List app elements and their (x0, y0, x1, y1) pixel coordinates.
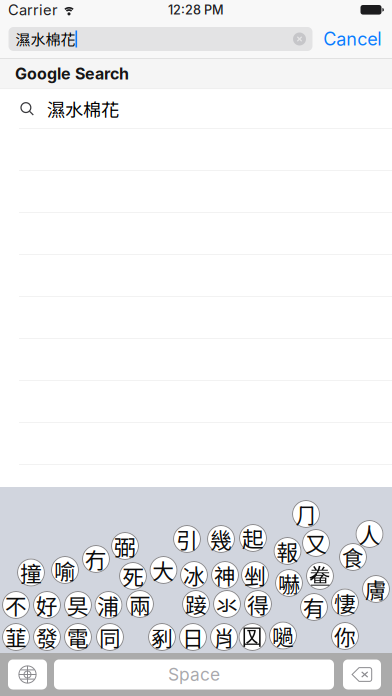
button[interactable]: 食 (339, 543, 367, 571)
button[interactable]: 好 (33, 591, 61, 619)
staticText: 踥 (185, 588, 207, 620)
staticText: 濕水棉花 (15, 28, 75, 50)
button[interactable]: 人 (355, 520, 383, 548)
button[interactable]: 引 (173, 525, 201, 553)
button[interactable]: 得 (244, 590, 272, 618)
button[interactable]: Delete (343, 659, 381, 689)
staticText: 剉 (244, 559, 266, 591)
button[interactable]: 冰 (180, 561, 208, 589)
button[interactable]: 不 (2, 591, 30, 619)
button[interactable]: Space (54, 659, 334, 689)
staticText: 12:28 PM (168, 2, 224, 18)
staticText: Cancel (323, 28, 381, 50)
button[interactable]: 㘝 (238, 623, 266, 651)
staticText: 大 (152, 554, 174, 586)
button[interactable]: 幾 (207, 525, 235, 553)
button[interactable]: Cancel (312, 23, 392, 55)
button[interactable]: 鲞 (306, 562, 334, 590)
button[interactable]: 起 (239, 524, 267, 552)
staticText: 弼 (114, 530, 136, 562)
staticText: 有 (303, 591, 325, 623)
staticText: 肖 (213, 621, 235, 653)
staticText: 㘝 (241, 623, 263, 651)
button[interactable]: 剢 (148, 623, 176, 651)
button[interactable]: 兩 (126, 590, 154, 618)
staticText: ⺆ (295, 498, 317, 530)
staticText: 又 (305, 527, 327, 559)
staticText: 死 (122, 560, 144, 592)
button[interactable]: 報 (273, 537, 301, 565)
button[interactable]: 氺 (213, 590, 241, 618)
button[interactable]: 喻 (51, 556, 79, 584)
staticText: 嚇 (278, 567, 300, 599)
staticText: 人 (358, 518, 380, 550)
button[interactable]: 撞 (17, 558, 45, 586)
button[interactable]: 肖 (210, 623, 238, 651)
button[interactable]: 旲 (64, 591, 92, 619)
button[interactable]: 㗻 (269, 621, 297, 649)
button[interactable]: Switch keyboard (8, 659, 47, 689)
staticText: 喻 (54, 554, 76, 586)
button[interactable]: 又 (302, 529, 330, 557)
button[interactable]: 膚 (362, 575, 390, 603)
staticText: 冰 (183, 559, 205, 591)
staticText: 你 (334, 620, 356, 652)
button[interactable]: 你 (331, 622, 359, 650)
button[interactable]: ⺆ (292, 500, 320, 528)
staticText: 好 (36, 589, 58, 621)
staticText: 發 (36, 621, 58, 653)
button[interactable]: 悽 (331, 588, 359, 616)
button[interactable]: 同 (96, 623, 124, 651)
staticText: 旲 (67, 589, 89, 621)
staticText: 㗻 (272, 620, 294, 651)
staticText: 冇 (85, 543, 107, 575)
button[interactable]: 濕水棉花 (0, 89, 392, 128)
staticText: 鲞 (309, 562, 331, 590)
staticText: 濕水棉花 (47, 95, 119, 122)
staticText: 韮 (5, 621, 27, 653)
button[interactable]: 有 (300, 593, 328, 621)
staticText: 膚 (365, 573, 387, 605)
staticText: 食 (342, 541, 364, 573)
staticText: 同 (99, 621, 121, 653)
staticText: 日 (182, 621, 204, 653)
button[interactable]: 電 (64, 623, 92, 651)
button[interactable]: 浦 (94, 591, 122, 619)
button[interactable]: 韮 (2, 623, 30, 651)
staticText: Space (168, 664, 220, 685)
staticText: 剢 (151, 621, 173, 653)
staticText: 得 (247, 588, 269, 620)
button[interactable]: 剉 (241, 561, 269, 589)
button[interactable]: 日 (179, 623, 207, 651)
staticText: 起 (242, 522, 264, 554)
staticText: 電 (67, 621, 89, 653)
button[interactable]: 踥 (182, 590, 210, 618)
button[interactable]: 神 (211, 561, 239, 589)
button[interactable]: 大 (149, 556, 177, 584)
staticText: 幾 (210, 523, 232, 555)
button[interactable]: 死 (119, 562, 147, 590)
staticText: Carrier (8, 1, 58, 19)
staticText: Google Search (15, 64, 129, 83)
staticText: 兩 (129, 588, 151, 620)
staticText: 不 (5, 589, 27, 621)
button[interactable]: 發 (33, 623, 61, 651)
button[interactable]: 嚇 (275, 569, 303, 597)
staticText: 引 (176, 523, 198, 555)
staticText: 撞 (20, 557, 42, 588)
staticText: 悽 (334, 587, 356, 618)
staticText: 報 (276, 535, 298, 567)
staticText: 浦 (97, 589, 119, 621)
button[interactable]: 冇 (82, 545, 110, 573)
button[interactable]: 弼 (111, 532, 139, 560)
staticText: 神 (214, 559, 236, 591)
staticText: 氺 (216, 588, 238, 620)
